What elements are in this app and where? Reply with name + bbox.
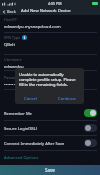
staticText: Remember Me xyxy=(4,111,84,116)
staticText: VPN Type xyxy=(4,35,20,40)
button[interactable]: Host/IP xyxy=(0,17,100,30)
button[interactable]: Save xyxy=(0,165,100,175)
staticText: 4:05 PM xyxy=(48,1,62,6)
staticText: Add New Network Device xyxy=(21,8,71,14)
staticText: edwardyu.mysnapcloud.com xyxy=(4,24,61,30)
staticText: •••••••• xyxy=(4,82,17,88)
button[interactable]: Back xyxy=(0,9,18,14)
staticText: Username xyxy=(4,57,22,62)
staticText: Save xyxy=(45,167,55,173)
staticText: Password xyxy=(4,75,21,80)
button[interactable]: Secure Login(SSL) xyxy=(0,121,100,135)
button[interactable]: Remember Me xyxy=(0,106,100,120)
staticText: edwardyu xyxy=(4,64,24,70)
staticText: Host/IP xyxy=(4,17,17,22)
button[interactable]: Password xyxy=(0,75,100,88)
button[interactable]: Continue xyxy=(54,94,80,104)
staticText: Advanced Options xyxy=(4,155,39,160)
staticText: Cancel xyxy=(24,96,38,102)
button[interactable]: Cancel xyxy=(19,94,43,104)
staticText: Secure Login(SSL) xyxy=(4,126,84,131)
staticText: Continue xyxy=(58,96,76,102)
staticText: QBelt xyxy=(4,42,15,48)
staticText: Back xyxy=(7,9,16,14)
button[interactable]: Advanced Options xyxy=(0,153,100,162)
button[interactable]: Username xyxy=(0,57,100,70)
staticText: Unable to automatically complete profile… xyxy=(19,72,80,87)
other: Info xyxy=(22,35,27,40)
button[interactable]: VPN Type xyxy=(0,35,100,48)
staticText: Connect Immediately After Save xyxy=(4,141,84,146)
button[interactable]: Connect Immediately After Save xyxy=(0,136,100,150)
staticText: i xyxy=(24,36,25,40)
